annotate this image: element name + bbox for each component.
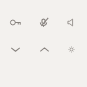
button[interactable]: Brightness [58, 36, 84, 62]
button[interactable]: Key [2, 9, 28, 35]
button[interactable]: Mic off [31, 9, 57, 35]
button[interactable]: Expand more [2, 36, 28, 62]
button[interactable]: Expand less [31, 36, 57, 62]
button[interactable]: Volume [58, 9, 84, 35]
